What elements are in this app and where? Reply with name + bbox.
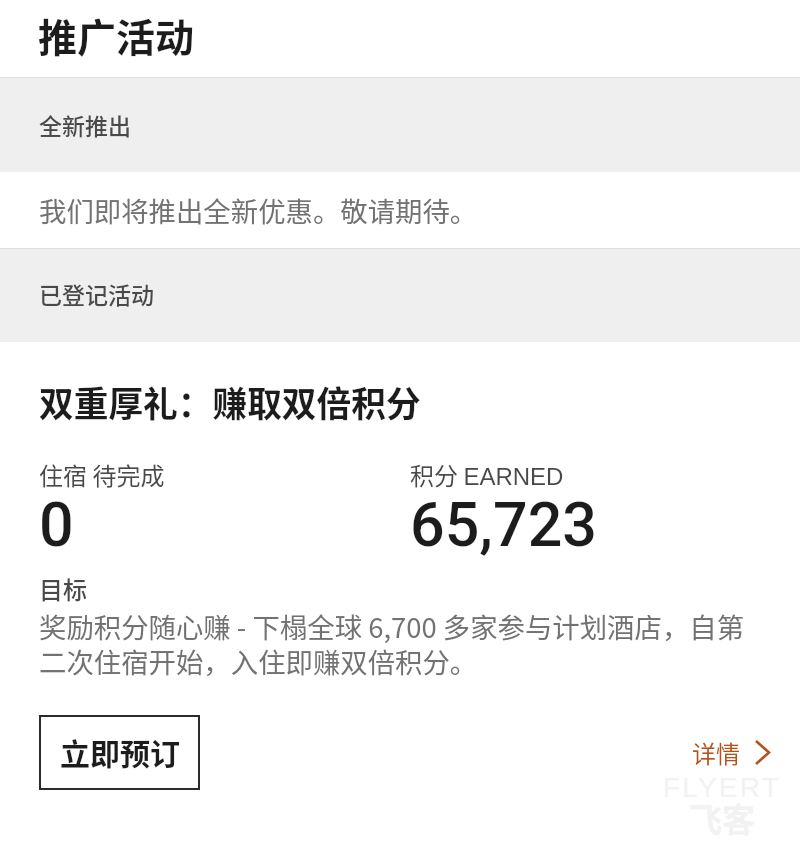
staticText: 65,723 bbox=[410, 489, 597, 560]
staticText: 双重厚礼：赚取双倍积分 bbox=[39, 377, 421, 427]
button[interactable]: 全新推出 bbox=[0, 78, 800, 172]
button[interactable]: 已登记活动 bbox=[0, 249, 800, 342]
button[interactable]: 我们即将推出全新优惠。敬请期待。 bbox=[0, 172, 800, 248]
staticText: 目标 bbox=[39, 571, 87, 606]
staticText: FLYERT bbox=[663, 772, 781, 803]
button[interactable]: 详情 bbox=[692, 729, 770, 776]
button[interactable]: 立即预订 bbox=[39, 715, 200, 790]
staticText: 奖励积分随心赚 - 下榻全球 6,700 多家参与计划酒店，自第二次住宿开始，入… bbox=[39, 606, 756, 681]
staticText: 我们即将推出全新优惠。敬请期待。 bbox=[39, 190, 478, 230]
other: 查看详情 bbox=[755, 740, 770, 765]
staticText: 立即预订 bbox=[60, 730, 180, 773]
staticText: 0 bbox=[39, 489, 74, 560]
staticText: 飞客 bbox=[689, 794, 755, 842]
staticText: 详情 bbox=[692, 735, 740, 770]
staticText: 推广活动 bbox=[38, 7, 195, 63]
staticText: 全新推出 bbox=[39, 108, 131, 141]
staticText: 已登记活动 bbox=[39, 277, 154, 310]
staticText: 积分 EARNED bbox=[410, 457, 564, 492]
staticText: 住宿 待完成 bbox=[39, 457, 165, 492]
